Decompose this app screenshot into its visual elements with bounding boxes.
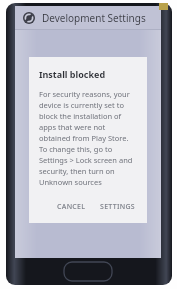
- button[interactable]: App icon: [23, 12, 35, 24]
- staticText: For security reasons, your device is cur…: [39, 89, 138, 187]
- button[interactable]: SETTINGS: [98, 200, 138, 214]
- staticText: CANCEL: [57, 202, 86, 212]
- button[interactable]: CANCEL: [55, 200, 88, 214]
- staticText: Development Settings: [42, 11, 146, 25]
- staticText: Install blocked: [39, 68, 106, 80]
- staticText: SETTINGS: [100, 202, 136, 212]
- button[interactable]: Home: [64, 262, 112, 281]
